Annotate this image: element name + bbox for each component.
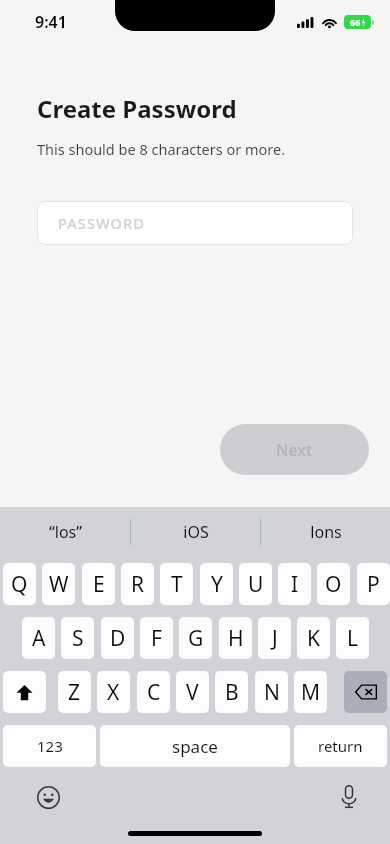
button[interactable]: S xyxy=(61,617,94,659)
button[interactable]: I xyxy=(278,563,311,605)
staticText: D xyxy=(110,624,126,653)
staticText: “los” xyxy=(49,521,82,543)
staticText: return xyxy=(318,736,363,756)
button[interactable]: Q xyxy=(3,563,36,605)
staticText: C xyxy=(147,678,161,707)
staticText: J xyxy=(272,624,278,653)
button[interactable]: Shift xyxy=(3,671,46,713)
button[interactable]: F xyxy=(140,617,173,659)
staticText: lons xyxy=(310,521,342,543)
staticText: Create Password xyxy=(37,92,237,125)
button[interactable]: “los” xyxy=(0,507,130,557)
button[interactable]: Y xyxy=(200,563,233,605)
staticText: Y xyxy=(211,570,223,599)
button[interactable]: return xyxy=(294,725,387,767)
button[interactable]: Next xyxy=(220,424,369,475)
staticText: 123 xyxy=(37,736,63,756)
staticText: P xyxy=(367,570,380,599)
button[interactable]: Dictation xyxy=(329,777,369,817)
button[interactable]: K xyxy=(297,617,330,659)
staticText: V xyxy=(186,678,199,707)
staticText: W xyxy=(49,570,69,599)
staticText: U xyxy=(248,570,264,599)
staticText: PASSWORD xyxy=(58,213,145,233)
staticText: L xyxy=(347,624,359,653)
staticText: This should be 8 characters or more. xyxy=(37,139,286,159)
staticText: A xyxy=(32,624,46,653)
staticText: I xyxy=(291,570,299,599)
button[interactable]: O xyxy=(317,563,350,605)
staticText: Next xyxy=(276,439,313,461)
button[interactable]: H xyxy=(219,617,252,659)
staticText: iOS xyxy=(183,521,209,543)
staticText: K xyxy=(307,624,320,653)
button[interactable]: R xyxy=(121,563,154,605)
button[interactable]: P xyxy=(357,563,390,605)
button[interactable]: A xyxy=(22,617,55,659)
staticText: N xyxy=(264,678,280,707)
button[interactable]: C xyxy=(137,671,170,713)
button[interactable]: Emoji xyxy=(28,777,68,817)
staticText: 66 xyxy=(350,16,361,28)
button[interactable]: L xyxy=(336,617,369,659)
staticText: M xyxy=(301,678,321,707)
staticText: Z xyxy=(68,678,81,707)
button[interactable]: PASSWORD xyxy=(37,201,353,245)
staticText: Q xyxy=(11,570,28,599)
button[interactable]: X xyxy=(97,671,130,713)
staticText: S xyxy=(72,624,84,653)
button[interactable]: Delete xyxy=(344,671,387,713)
button[interactable]: G xyxy=(179,617,212,659)
button[interactable]: M xyxy=(294,671,327,713)
staticText: G xyxy=(188,624,204,653)
button[interactable]: lons xyxy=(261,507,390,557)
button[interactable]: E xyxy=(82,563,115,605)
button[interactable]: N xyxy=(255,671,288,713)
button[interactable]: V xyxy=(176,671,209,713)
staticText: F xyxy=(151,624,162,653)
staticText: R xyxy=(131,570,145,599)
button[interactable]: J xyxy=(258,617,291,659)
staticText: E xyxy=(93,570,105,599)
button[interactable]: D xyxy=(101,617,134,659)
staticText: 9:41 xyxy=(35,11,67,33)
button[interactable]: iOS xyxy=(131,507,260,557)
staticText: X xyxy=(107,678,120,707)
staticText: T xyxy=(171,570,183,599)
staticText: H xyxy=(228,624,244,653)
button[interactable]: W xyxy=(42,563,75,605)
button[interactable]: T xyxy=(160,563,193,605)
staticText: O xyxy=(325,570,342,599)
button[interactable]: Z xyxy=(58,671,91,713)
button[interactable]: U xyxy=(239,563,272,605)
staticText: space xyxy=(172,735,218,758)
button[interactable]: space xyxy=(100,725,290,767)
button[interactable]: 123 xyxy=(3,725,96,767)
button[interactable]: B xyxy=(215,671,248,713)
staticText: B xyxy=(225,678,239,707)
